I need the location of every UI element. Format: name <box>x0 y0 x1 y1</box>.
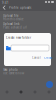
button[interactable]: Tab 1 <box>0 89 14 95</box>
staticText: Upload file <box>3 14 19 17</box>
staticText: Create <box>44 56 53 59</box>
staticText: Paste a shared url <box>3 26 27 29</box>
staticText: From this device <box>3 17 24 21</box>
button[interactable]: Tab 4 <box>42 89 56 95</box>
button[interactable]: Tab 2 <box>14 89 28 95</box>
button[interactable]: New item <box>46 81 53 88</box>
button[interactable]: Cancel <box>32 56 41 59</box>
button[interactable]: Upload file <box>3 14 47 21</box>
staticText: 9:41 <box>2 1 9 4</box>
staticText: Create new folder <box>6 36 31 39</box>
staticText: Take photo <box>3 68 18 71</box>
staticText: Profile uploads <box>9 6 31 9</box>
button[interactable]: Tab 3 <box>28 89 42 95</box>
button[interactable]: Back <box>0 0 8 11</box>
button[interactable]: Take photo <box>3 68 47 75</box>
button[interactable]: Create <box>44 56 53 59</box>
button[interactable]: Upload link <box>3 22 47 29</box>
staticText: Use camera now <box>3 71 24 75</box>
staticText: Cancel <box>32 56 41 59</box>
staticText: Upload link <box>3 22 19 26</box>
